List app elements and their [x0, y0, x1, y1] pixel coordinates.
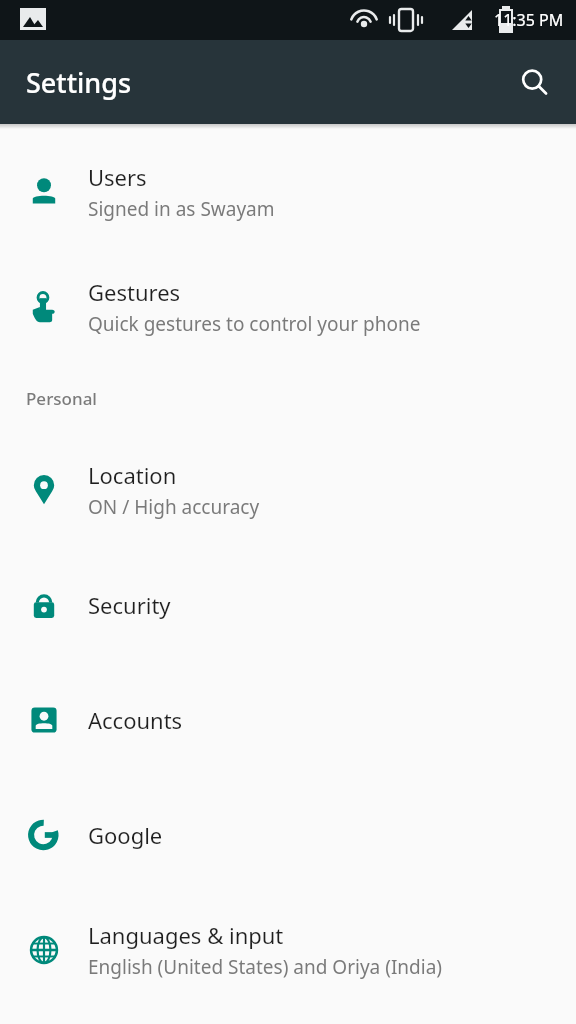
staticText: Accounts	[88, 705, 183, 735]
staticText: Google	[88, 820, 163, 850]
button[interactable]: Search	[506, 54, 562, 110]
button[interactable]: Location	[0, 432, 576, 547]
staticText: Security	[88, 590, 171, 620]
staticText: Signed in as Swayam	[88, 196, 275, 222]
button[interactable]: Languages & input	[0, 892, 576, 1007]
staticText: Personal	[26, 387, 97, 410]
staticText: ON / High accuracy	[88, 494, 260, 520]
staticText: 11:35 PM	[494, 9, 564, 31]
button[interactable]: Users	[0, 134, 576, 249]
staticText: English (United States) and Oriya (India…	[88, 954, 443, 980]
button[interactable]: Security	[0, 547, 576, 662]
button[interactable]: Gestures	[0, 249, 576, 364]
staticText: Languages & input	[88, 920, 284, 950]
staticText: Gestures	[88, 277, 181, 307]
button[interactable]: Accounts	[0, 662, 576, 777]
staticText: Quick gestures to control your phone	[88, 311, 421, 337]
staticText: Location	[88, 460, 177, 490]
button[interactable]: Google	[0, 777, 576, 892]
staticText: Users	[88, 162, 147, 192]
staticText: Settings	[26, 64, 132, 101]
